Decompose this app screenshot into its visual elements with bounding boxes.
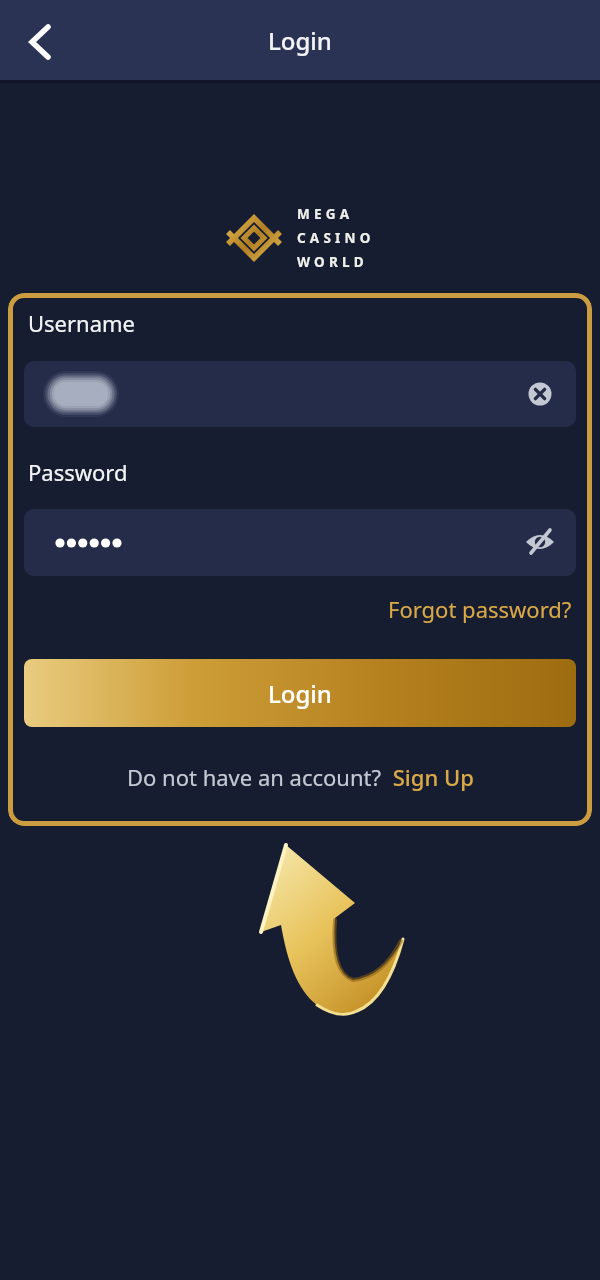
staticText: CASINO: [297, 229, 375, 247]
button[interactable]: Login: [24, 659, 576, 727]
button[interactable]: [16, 18, 60, 62]
button[interactable]: [24, 509, 576, 576]
staticText: Password: [28, 457, 128, 487]
staticText: Username: [28, 308, 136, 338]
staticText: Login: [268, 24, 332, 57]
staticText: MEGA: [297, 205, 354, 223]
staticText: WORLD: [297, 253, 368, 271]
button[interactable]: Sign Up: [387, 762, 474, 792]
button[interactable]: Forgot password?: [388, 594, 572, 624]
staticText: Login: [268, 677, 332, 710]
staticText: Do not have an account?: [127, 762, 387, 792]
button[interactable]: [24, 361, 576, 427]
